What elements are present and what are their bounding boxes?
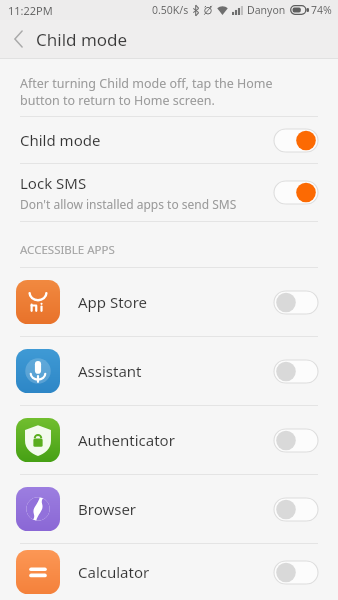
button[interactable]: App Store [0, 268, 338, 336]
staticText: Child mode [36, 28, 128, 51]
staticText: Assistant [78, 361, 274, 381]
button[interactable]: On [274, 129, 318, 152]
button[interactable]: Off [274, 360, 318, 383]
staticText: Lock SMS [20, 173, 87, 193]
button[interactable]: Back [0, 20, 36, 58]
staticText: 74% [311, 3, 332, 17]
staticText: Browser [78, 499, 274, 519]
staticText: ACCESSIBLE APPS [20, 242, 115, 258]
button[interactable]: Assistant [0, 337, 338, 405]
button[interactable]: Child mode [0, 117, 338, 163]
button[interactable]: Off [274, 561, 318, 584]
staticText: After turning Child mode off, tap the Ho… [20, 75, 308, 109]
staticText: Calculator [78, 562, 274, 582]
button[interactable]: Off [274, 429, 318, 452]
button[interactable]: Off [274, 498, 318, 521]
button[interactable]: On [274, 181, 318, 204]
button[interactable]: Off [274, 291, 318, 314]
staticText: Authenticator [78, 430, 274, 450]
button[interactable]: Calculator [0, 544, 338, 600]
staticText: 0.50K/s [152, 3, 189, 17]
staticText: 11:22PM [8, 3, 53, 18]
staticText: Danyon [247, 3, 286, 17]
button[interactable]: Browser [0, 475, 338, 543]
staticText: App Store [78, 292, 274, 312]
button[interactable]: Authenticator [0, 406, 338, 474]
button[interactable]: Lock SMS [0, 164, 338, 221]
staticText: Child mode [20, 130, 101, 150]
staticText: Don't allow installed apps to send SMS [20, 196, 237, 212]
